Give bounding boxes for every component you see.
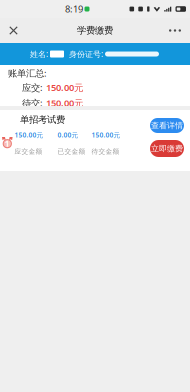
staticText: 立即缴费 xyxy=(151,144,183,153)
button[interactable]: 立即缴费 xyxy=(150,140,184,157)
staticText: 身份证号: xyxy=(69,49,103,59)
staticText: 150.00元 xyxy=(46,81,83,94)
button[interactable]: 查看详情 xyxy=(150,118,184,133)
staticText: 账单汇总: xyxy=(8,67,47,79)
button[interactable]: More xyxy=(164,21,186,40)
staticText: 0.00元 xyxy=(58,130,79,139)
button[interactable]: Close xyxy=(4,21,23,40)
staticText: 姓名: xyxy=(30,49,48,59)
staticText: 8:19 xyxy=(65,3,83,15)
staticText: 查看详情 xyxy=(151,121,183,130)
staticText: 150.00元 xyxy=(15,130,44,139)
staticText: 学费缴费 xyxy=(77,25,113,36)
staticText: 待交金额 xyxy=(92,147,120,155)
staticText: 待交: xyxy=(22,97,43,109)
staticText: 应交金额 xyxy=(15,147,43,155)
staticText: 150.00元 xyxy=(46,97,83,109)
staticText: 应交: xyxy=(22,81,43,94)
staticText: 单招考试费 xyxy=(20,114,65,125)
staticText: 已交金额 xyxy=(58,147,86,155)
staticText: 150.00元 xyxy=(92,130,121,139)
staticText: 1 xyxy=(5,138,10,149)
